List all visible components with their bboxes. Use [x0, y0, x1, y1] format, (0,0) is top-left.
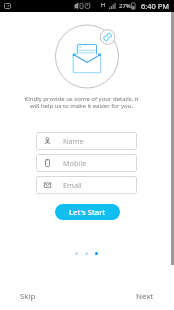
staticText: Let's Start: [69, 207, 106, 217]
staticText: 27%: [119, 2, 131, 10]
button[interactable]: Skip: [20, 291, 36, 302]
button[interactable]: [95, 252, 98, 255]
staticText: Name: [63, 136, 84, 146]
button[interactable]: Let's Start: [55, 204, 120, 220]
staticText: Skip: [20, 291, 36, 302]
staticText: Next: [136, 291, 154, 302]
button[interactable]: Email: [36, 176, 137, 194]
staticText: Mobile: [63, 158, 87, 168]
staticText: Email: [63, 180, 82, 190]
staticText: H: [101, 1, 106, 8]
staticText: 6:40 PM: [141, 1, 170, 11]
staticText: Kindly provide us some of your details, …: [0, 95, 163, 110]
button[interactable]: Name: [36, 132, 137, 150]
button[interactable]: [75, 252, 78, 255]
button[interactable]: Mobile: [36, 154, 137, 172]
button[interactable]: [85, 252, 88, 255]
button[interactable]: Next: [136, 291, 154, 302]
